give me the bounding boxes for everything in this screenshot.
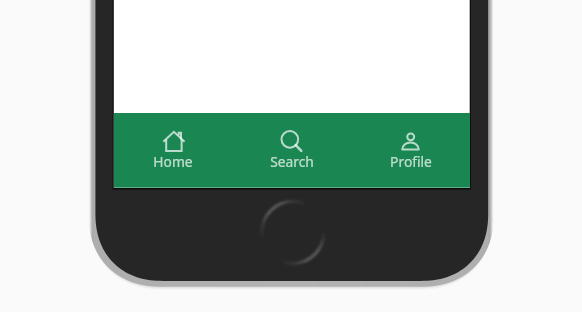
button[interactable]: Search	[232, 113, 351, 188]
button[interactable]: Profile	[351, 113, 470, 188]
staticText: Search	[270, 152, 314, 171]
staticText: Home	[153, 152, 193, 171]
staticText: Profile	[390, 152, 432, 171]
button[interactable]: Home button	[262, 202, 323, 263]
button[interactable]: Home	[114, 113, 232, 188]
